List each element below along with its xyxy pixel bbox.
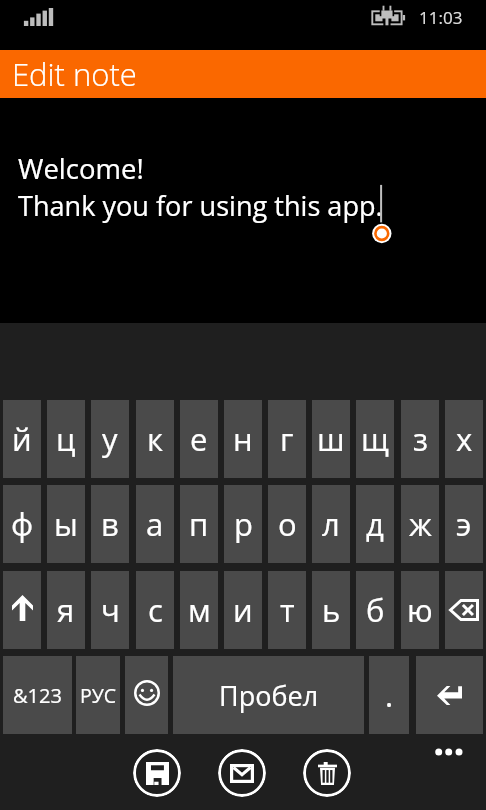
button[interactable]: э (445, 485, 483, 563)
staticText: 11:03 (419, 6, 463, 29)
button[interactable]: з (401, 400, 439, 478)
staticText: щ (361, 418, 389, 460)
button[interactable]: Emoji (125, 656, 168, 734)
staticText: . (385, 674, 394, 716)
button[interactable]: у (91, 400, 129, 478)
button[interactable]: л (312, 485, 350, 563)
other: Shift (12, 595, 33, 621)
staticText: р (234, 503, 253, 545)
button[interactable]: ц (47, 400, 85, 478)
button[interactable]: к (136, 400, 174, 478)
button[interactable]: Welcome! (0, 98, 486, 323)
button[interactable]: и (224, 571, 262, 649)
button[interactable]: м (180, 571, 218, 649)
staticText: ч (101, 589, 120, 631)
button[interactable]: г (268, 400, 306, 478)
staticText: н (233, 418, 253, 460)
button[interactable]: ь (312, 571, 350, 649)
button[interactable]: Delete (303, 749, 351, 797)
button[interactable]: т (268, 571, 306, 649)
button[interactable]: Backspace (445, 571, 483, 649)
button[interactable]: Enter (416, 656, 483, 734)
button[interactable]: Shift (3, 571, 41, 649)
button[interactable]: с (136, 571, 174, 649)
button[interactable]: д (356, 485, 394, 563)
staticText: ю (407, 589, 433, 631)
staticText: ж (409, 503, 432, 545)
button[interactable]: More options (430, 738, 472, 768)
staticText: а (146, 503, 164, 545)
staticText: ш (317, 418, 345, 460)
button[interactable]: е (180, 400, 218, 478)
button[interactable]: ы (47, 485, 85, 563)
button[interactable]: ю (401, 571, 439, 649)
staticText: л (322, 503, 340, 545)
button[interactable]: ж (401, 485, 439, 563)
staticText: в (101, 503, 119, 545)
staticText: у (102, 418, 118, 460)
button[interactable]: . (369, 656, 409, 734)
button[interactable]: Edit note (0, 50, 486, 98)
staticText: &123 (13, 682, 62, 709)
staticText: т (280, 589, 295, 631)
staticText: й (12, 418, 32, 460)
staticText: г (280, 418, 294, 460)
button[interactable]: й (3, 400, 41, 478)
button[interactable]: я (47, 571, 85, 649)
staticText: РУС (80, 682, 117, 709)
staticText: д (366, 503, 384, 545)
button[interactable]: Пробел (173, 656, 364, 734)
button[interactable]: щ (356, 400, 394, 478)
button[interactable]: в (91, 485, 129, 563)
staticText: е (190, 418, 208, 460)
staticText: з (413, 418, 428, 460)
button[interactable]: п (180, 485, 218, 563)
other: Emoji (134, 680, 160, 706)
staticText: к (147, 418, 164, 460)
staticText: ь (322, 589, 341, 631)
staticText: я (57, 589, 75, 631)
staticText: ц (56, 418, 76, 460)
staticText: м (188, 589, 211, 631)
staticText: с (148, 589, 163, 631)
button[interactable]: р (224, 485, 262, 563)
staticText: ф (11, 503, 34, 545)
staticText: Пробел (219, 677, 319, 714)
button[interactable]: х (445, 400, 483, 478)
other: Backspace (449, 599, 479, 621)
staticText: э (456, 503, 472, 545)
button[interactable]: &123 (3, 656, 72, 734)
other: Enter (437, 686, 462, 705)
staticText: о (278, 503, 297, 545)
button[interactable]: Mail (218, 749, 266, 797)
button[interactable]: РУС (76, 656, 120, 734)
staticText: Edit note (12, 53, 137, 95)
staticText: б (366, 589, 385, 631)
button[interactable]: б (356, 571, 394, 649)
staticText: и (233, 589, 253, 631)
button[interactable]: ч (91, 571, 129, 649)
staticText: п (189, 503, 209, 545)
staticText: Thank you for using this app. (18, 187, 383, 224)
button[interactable]: а (136, 485, 174, 563)
staticText: х (456, 418, 473, 460)
button[interactable]: н (224, 400, 262, 478)
staticText: ы (54, 503, 78, 545)
button[interactable]: ф (3, 485, 41, 563)
button[interactable]: о (268, 485, 306, 563)
button[interactable]: ш (312, 400, 350, 478)
button[interactable]: Save (133, 749, 181, 797)
staticText: Welcome! (18, 150, 144, 187)
